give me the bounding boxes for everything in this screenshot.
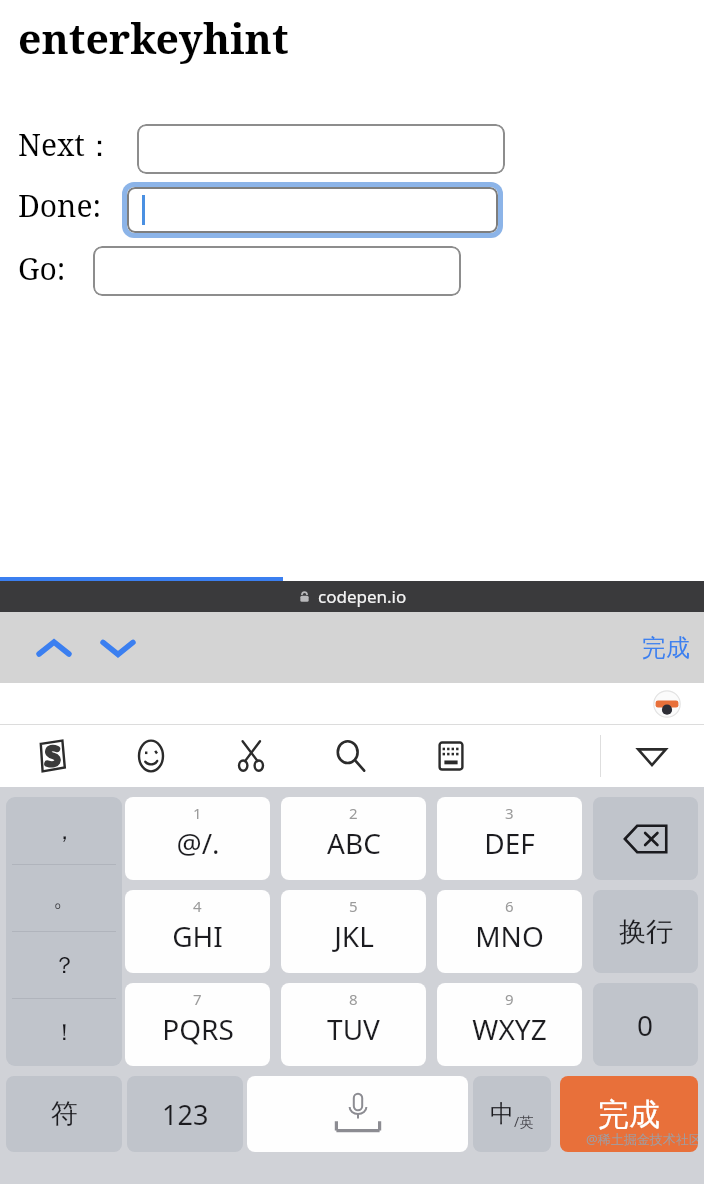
staticText: ABC xyxy=(327,824,381,862)
staticText: 完成 xyxy=(642,633,690,663)
button[interactable]: 。 xyxy=(6,865,122,932)
staticText: ！ xyxy=(53,1018,76,1047)
button[interactable]: 完成 xyxy=(642,633,690,663)
staticText: 6 xyxy=(505,896,514,916)
staticText: codepen.io xyxy=(318,585,407,608)
button[interactable]: Input method xyxy=(28,735,74,777)
staticText: Next： xyxy=(18,124,115,165)
button[interactable]: 中 xyxy=(473,1076,551,1152)
button[interactable]: 3 xyxy=(437,797,582,880)
staticText: 5 xyxy=(349,896,358,916)
button[interactable]: 8 xyxy=(281,983,426,1066)
staticText: @/. xyxy=(176,824,220,862)
button[interactable]: Previous field xyxy=(28,628,80,668)
staticText: /英 xyxy=(514,1112,534,1131)
button[interactable]: 6 xyxy=(437,890,582,973)
staticText: GHI xyxy=(172,917,223,955)
button[interactable]: ！ xyxy=(6,999,122,1066)
staticText: MNO xyxy=(475,917,544,955)
button[interactable]: 7 xyxy=(125,983,270,1066)
staticText: 0 xyxy=(637,1006,654,1044)
button[interactable]: ？ xyxy=(6,932,122,999)
staticText: Go: xyxy=(18,248,66,289)
button[interactable] xyxy=(122,182,503,238)
staticText: 3 xyxy=(505,803,514,823)
button[interactable]: Space / voice input xyxy=(247,1076,468,1152)
staticText: 换行 xyxy=(619,915,673,949)
button[interactable]: Emoji xyxy=(128,735,174,777)
button[interactable]: Sticker xyxy=(652,689,682,719)
staticText: Done: xyxy=(18,185,102,226)
button[interactable]: 完成 xyxy=(560,1076,698,1152)
button[interactable]: 4 xyxy=(125,890,270,973)
staticText: 符 xyxy=(51,1097,78,1131)
button[interactable]: 换行 xyxy=(593,890,698,973)
staticText: PQRS xyxy=(162,1010,234,1048)
staticText: 完成 xyxy=(598,1095,660,1134)
button[interactable]: Next field xyxy=(92,628,144,668)
staticText: ， xyxy=(53,817,76,846)
button[interactable]: 5 xyxy=(281,890,426,973)
staticText: TUV xyxy=(327,1010,380,1048)
button[interactable]: 9 xyxy=(437,983,582,1066)
button[interactable]: 1 xyxy=(125,797,270,880)
staticText: 123 xyxy=(162,1096,209,1133)
button[interactable]: Clipboard xyxy=(228,735,274,777)
button[interactable]: Backspace xyxy=(593,797,698,880)
button[interactable]: 0 xyxy=(593,983,698,1066)
staticText: 中 xyxy=(490,1099,514,1129)
staticText: 2 xyxy=(349,803,358,823)
staticText: JKL xyxy=(334,917,374,955)
staticText: 4 xyxy=(193,896,202,916)
staticText: WXYZ xyxy=(472,1010,547,1048)
staticText: 7 xyxy=(193,989,202,1009)
staticText: 。 xyxy=(53,884,76,913)
staticText: 1 xyxy=(193,803,202,823)
staticText: 9 xyxy=(505,989,514,1009)
button[interactable]: 符 xyxy=(6,1076,122,1152)
button[interactable]: Search xyxy=(328,735,374,777)
staticText: DEF xyxy=(484,824,535,862)
button[interactable]: Hide keyboard xyxy=(624,739,680,775)
staticText: enterkeyhint xyxy=(18,10,289,66)
button[interactable]: Keyboard settings xyxy=(428,735,474,777)
staticText: @稀土掘金技术社区 xyxy=(586,1130,698,1148)
button[interactable]: ， xyxy=(6,797,122,865)
button[interactable] xyxy=(137,124,505,174)
button[interactable] xyxy=(93,246,461,296)
button[interactable]: 123 xyxy=(127,1076,243,1152)
staticText: 8 xyxy=(349,989,358,1009)
staticText: ？ xyxy=(53,951,76,980)
button[interactable]: 2 xyxy=(281,797,426,880)
